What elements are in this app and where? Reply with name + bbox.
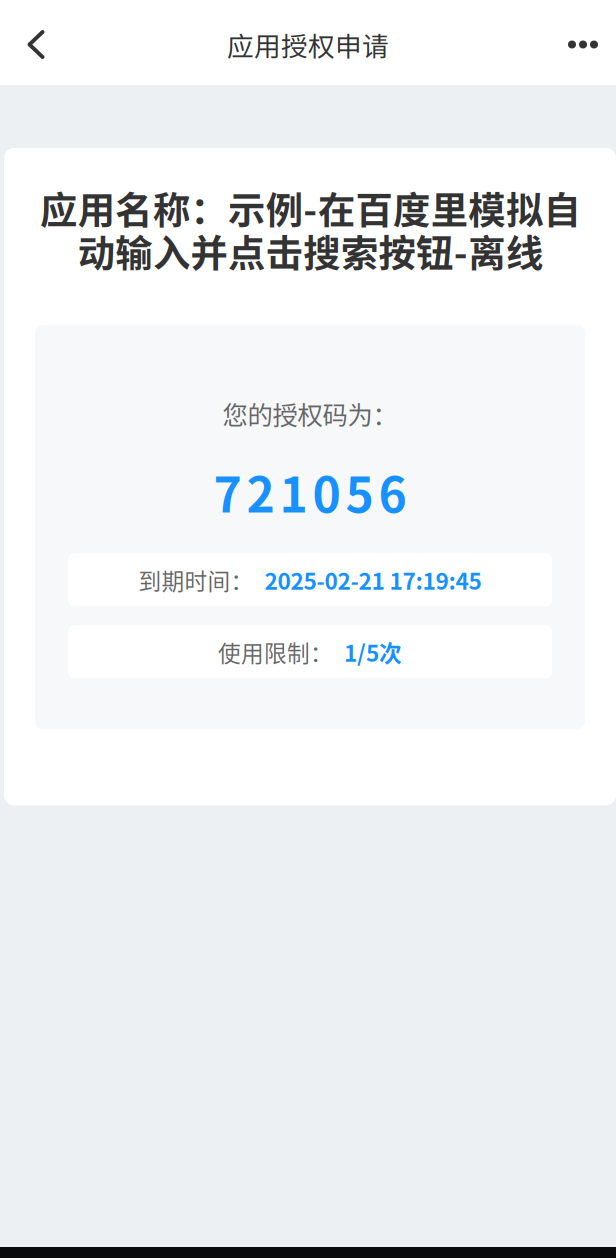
button[interactable]: More options bbox=[550, 0, 616, 85]
staticText: 您的授权码为： bbox=[222, 395, 397, 432]
staticText: 到期时间： bbox=[138, 563, 253, 596]
staticText: 1/5次 bbox=[344, 635, 402, 668]
staticText: 721056 bbox=[213, 457, 406, 526]
button[interactable]: Back bbox=[0, 0, 72, 85]
staticText: 使用限制： bbox=[218, 635, 333, 668]
staticText: 应用授权申请 bbox=[227, 25, 389, 64]
staticText: 2025-02-21 17:19:45 bbox=[264, 563, 481, 596]
staticText: 应用名称：示例-在百度里模拟自动输入并点击搜索按钮-离线 bbox=[40, 181, 580, 278]
